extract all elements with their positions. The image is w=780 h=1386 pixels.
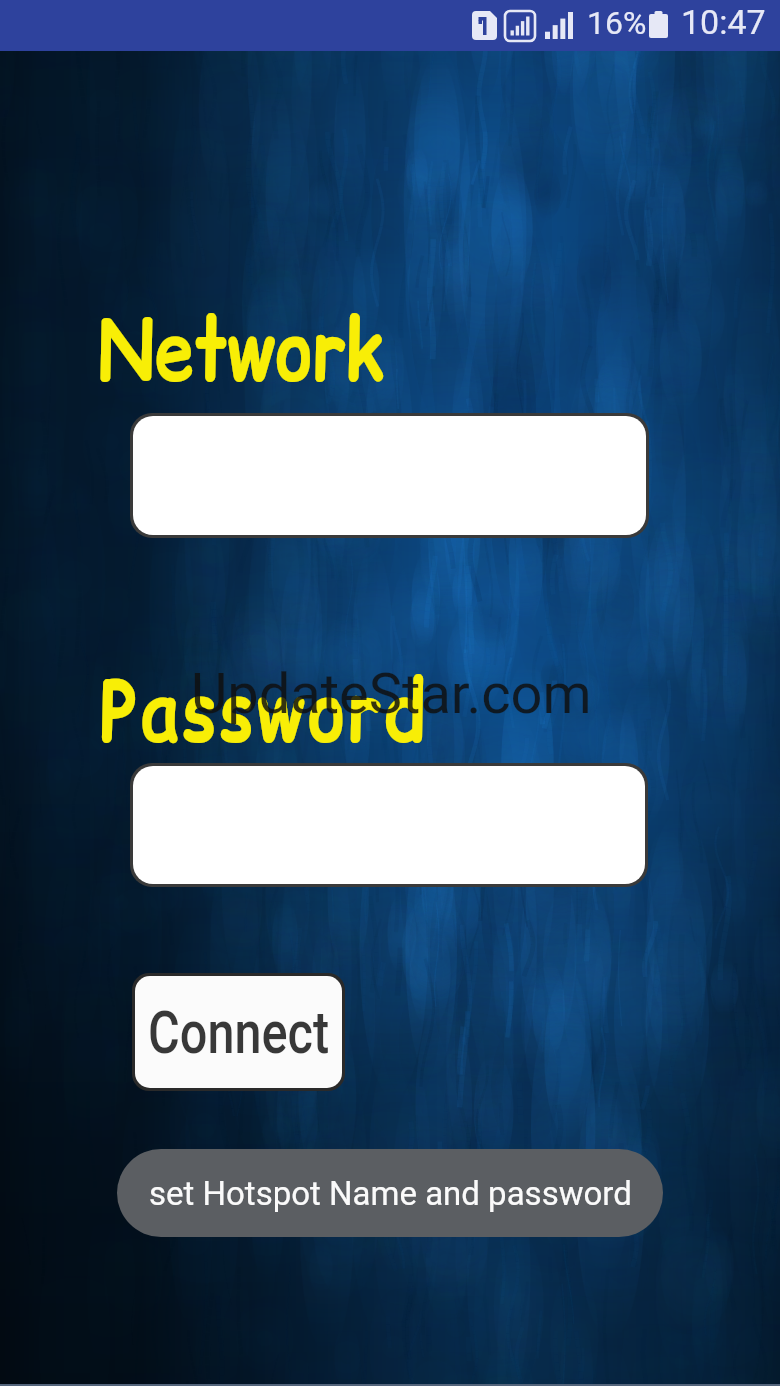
staticText: set Hotspot Name and password [149, 1174, 632, 1213]
staticText: UpdateStar.com [191, 661, 592, 727]
staticText: 16% [587, 4, 647, 42]
staticText: Connect [148, 997, 329, 1067]
button[interactable]: Text input field [133, 416, 646, 535]
button[interactable]: Text input field [133, 766, 645, 884]
staticText: Network [98, 291, 384, 408]
staticText: Password [100, 652, 429, 769]
staticText: 10:47 [681, 2, 766, 42]
button[interactable]: Connect [135, 976, 342, 1088]
